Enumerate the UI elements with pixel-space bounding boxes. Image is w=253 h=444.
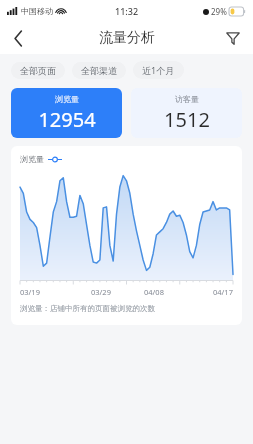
staticText: 浏览量：店铺中所有的页面被浏览的次数 <box>20 304 155 313</box>
staticText: 1512 <box>164 106 210 133</box>
button[interactable]: Filter <box>213 22 253 54</box>
staticText: 浏览量 <box>55 94 79 104</box>
button[interactable]: Back <box>0 22 36 54</box>
staticText: 03/29 <box>91 287 111 297</box>
button[interactable]: 近1个月 <box>133 61 184 79</box>
staticText: 全部渠道 <box>81 65 117 76</box>
staticText: 近1个月 <box>142 64 175 76</box>
staticText: 04/08 <box>144 287 164 297</box>
staticText: 04/17 <box>213 287 233 297</box>
button[interactable]: 浏览量 <box>11 88 122 138</box>
staticText: 29% <box>211 6 227 17</box>
staticText: 全部页面 <box>20 65 56 76</box>
staticText: 流量分析 <box>99 29 155 47</box>
staticText: 11:32 <box>115 5 139 17</box>
staticText: 03/19 <box>20 287 40 297</box>
button[interactable]: 全部渠道 <box>72 62 126 79</box>
staticText: 访客量 <box>175 94 199 104</box>
button[interactable]: 访客量 <box>131 88 242 138</box>
staticText: 中国移动 <box>21 6 53 16</box>
button[interactable]: 全部页面 <box>11 62 65 79</box>
staticText: 12954 <box>38 106 96 133</box>
staticText: 浏览量 <box>20 154 44 164</box>
